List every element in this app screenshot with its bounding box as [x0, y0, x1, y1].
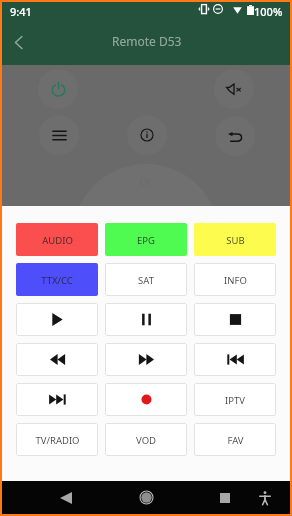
- staticText: 9:41: [10, 4, 32, 19]
- button[interactable]: Home: [131, 481, 161, 514]
- button[interactable]: Recents: [210, 481, 240, 514]
- button[interactable]: prev: [194, 343, 276, 376]
- staticText: FAV: [227, 434, 244, 447]
- staticText: INFO: [224, 274, 247, 287]
- staticText: Remote D53: [112, 33, 182, 49]
- button[interactable]: Power: [38, 69, 78, 109]
- button[interactable]: Back: [5, 29, 31, 55]
- staticText: IPTV: [225, 394, 245, 407]
- button[interactable]: stop: [194, 303, 276, 336]
- staticText: SUB: [226, 234, 245, 247]
- button[interactable]: Menu: [39, 115, 79, 155]
- button[interactable]: ffwd: [105, 343, 187, 376]
- button[interactable]: VOD: [105, 423, 187, 456]
- button[interactable]: TV/RADIO: [16, 423, 98, 456]
- button[interactable]: pause: [105, 303, 187, 336]
- button[interactable]: FAV: [194, 423, 276, 456]
- staticText: 100%: [254, 4, 283, 19]
- button[interactable]: SAT: [105, 263, 187, 296]
- staticText: VOD: [136, 434, 156, 447]
- button[interactable]: Back: [51, 481, 81, 514]
- staticText: AUDIO: [42, 234, 73, 247]
- button[interactable]: AUDIO: [16, 223, 98, 256]
- button[interactable]: TTX/CC: [16, 263, 98, 296]
- staticText: SAT: [138, 274, 154, 287]
- button[interactable]: Mute: [214, 69, 254, 109]
- button[interactable]: Accessibility: [250, 481, 280, 514]
- button[interactable]: next: [16, 383, 98, 416]
- staticText: TTX/CC: [41, 274, 73, 287]
- staticText: TV/RADIO: [35, 434, 80, 447]
- button[interactable]: rew: [16, 343, 98, 376]
- button[interactable]: Info: [127, 115, 167, 155]
- button[interactable]: Return: [215, 116, 255, 156]
- button[interactable]: EPG: [105, 223, 187, 256]
- button[interactable]: rec: [105, 383, 187, 416]
- button[interactable]: IPTV: [194, 383, 276, 416]
- button[interactable]: SUB: [194, 223, 276, 256]
- button[interactable]: INFO: [194, 263, 276, 296]
- staticText: EPG: [137, 234, 155, 247]
- button[interactable]: play: [16, 303, 98, 336]
